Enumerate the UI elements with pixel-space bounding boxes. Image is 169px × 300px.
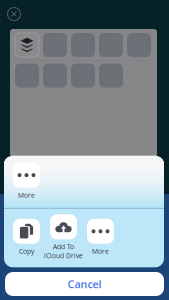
staticText: More — [18, 191, 35, 200]
staticText: Copy — [19, 247, 34, 256]
button[interactable]: Add To — [45, 214, 82, 260]
button[interactable]: Copy — [8, 219, 45, 256]
staticText: More — [92, 247, 109, 256]
button[interactable]: More — [8, 163, 45, 200]
button[interactable]: More — [82, 219, 119, 256]
staticText: Add To — [53, 242, 74, 251]
staticText: Cancel — [67, 277, 101, 291]
button[interactable]: Cancel — [5, 272, 164, 296]
staticText: iCloud Drive — [44, 251, 83, 260]
button[interactable]: Close — [2, 2, 26, 26]
